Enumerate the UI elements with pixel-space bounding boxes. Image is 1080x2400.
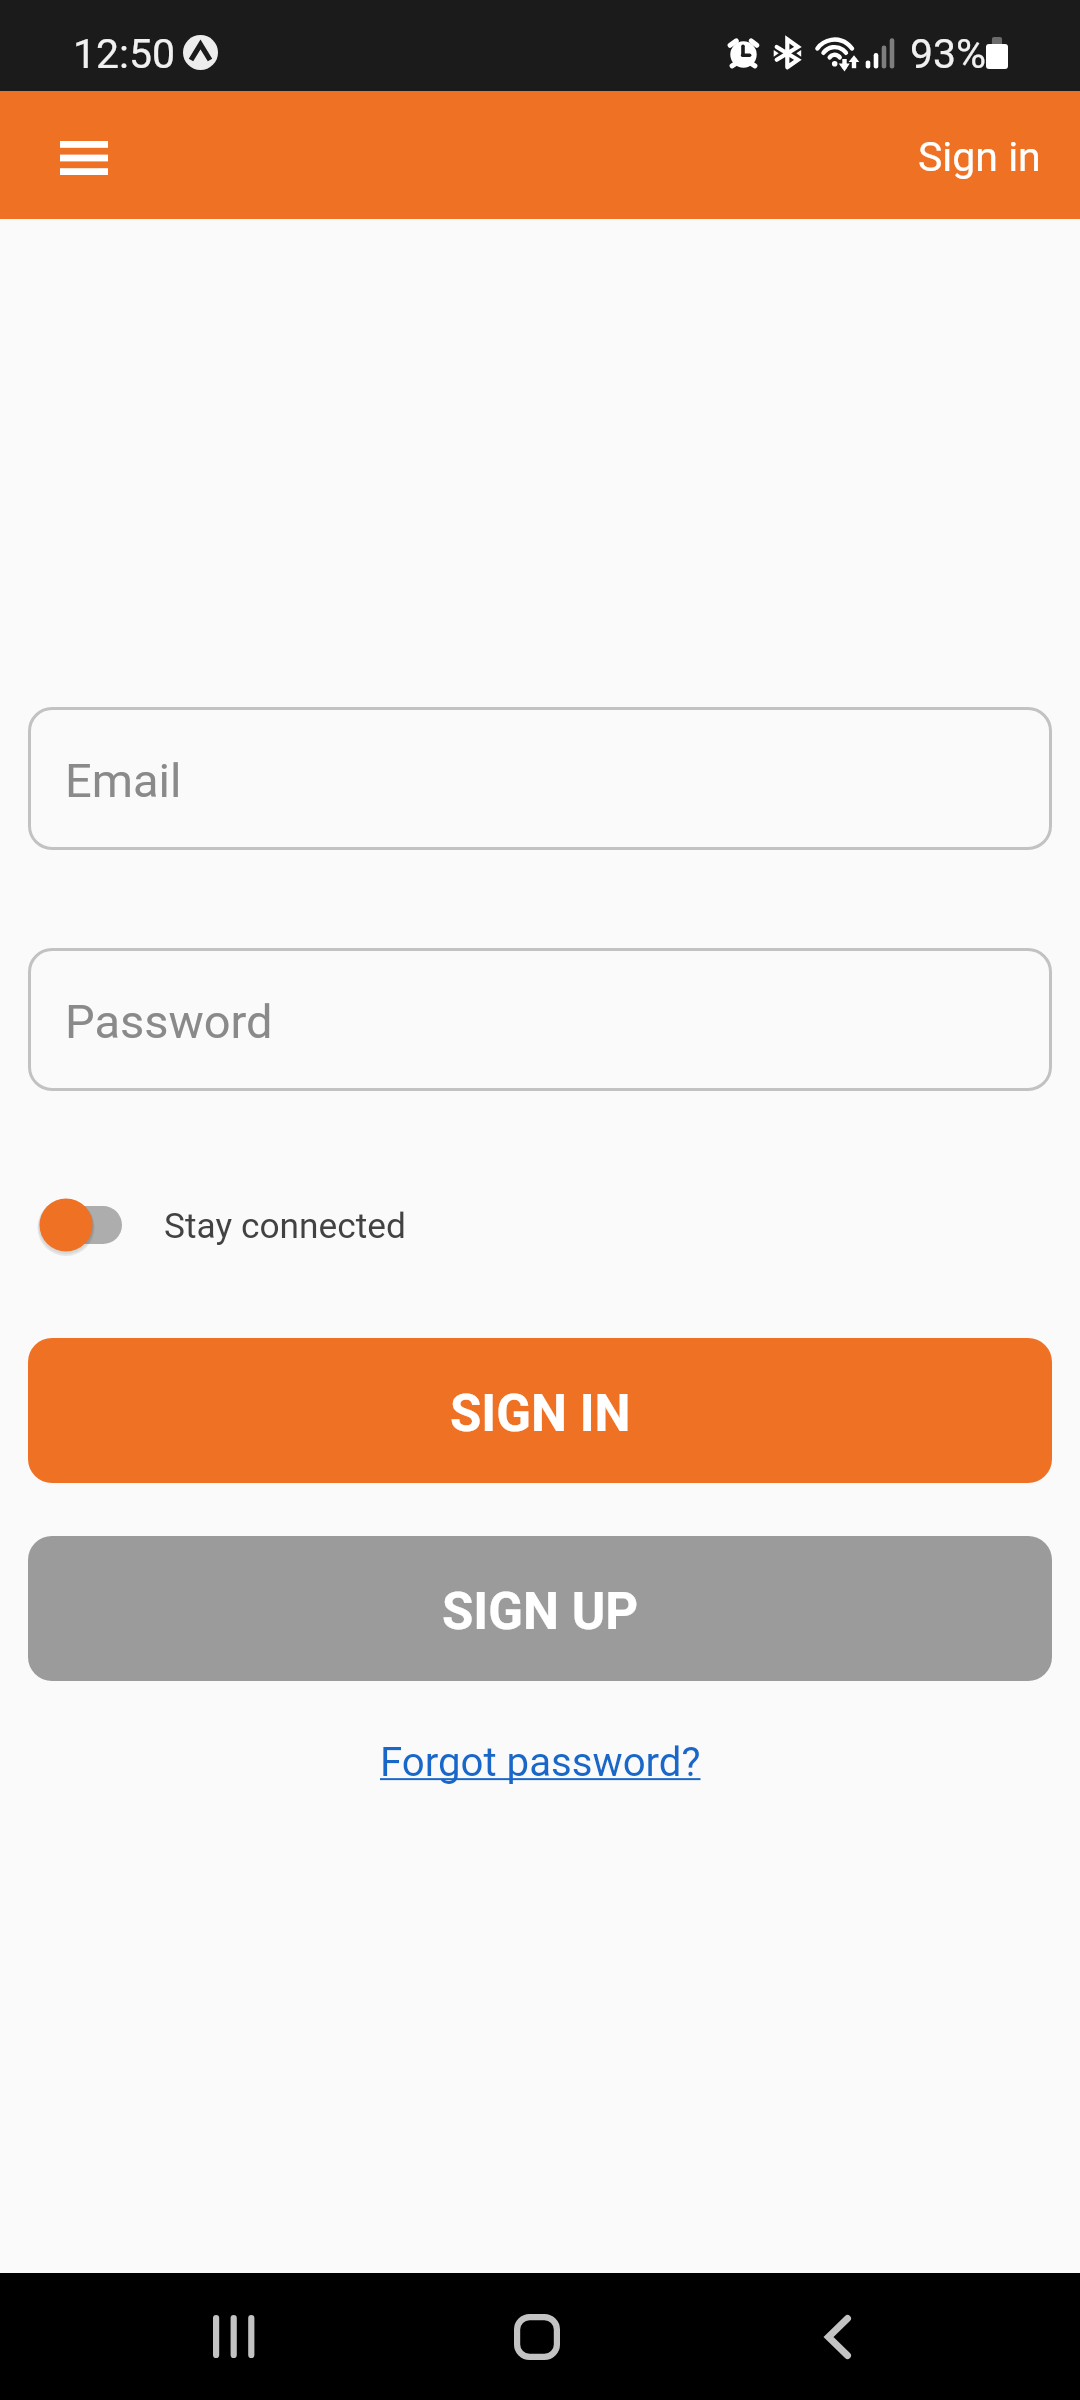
button[interactable]: Back: [778, 2274, 898, 2399]
button[interactable]: SIGN IN: [28, 1338, 1052, 1483]
staticText: Forgot password?: [380, 1739, 701, 1786]
button[interactable]: Open navigation menu: [41, 106, 126, 210]
button[interactable]: SIGN UP: [28, 1536, 1052, 1681]
staticText: SIGN UP: [442, 1582, 639, 1642]
button[interactable]: Forgot password?: [364, 1725, 717, 1800]
staticText: 93%: [910, 30, 987, 78]
staticText: Stay connected: [164, 1205, 406, 1246]
button[interactable]: Password: [28, 948, 1052, 1091]
staticText: Sign in: [918, 133, 1041, 181]
staticText: SIGN IN: [450, 1384, 631, 1444]
button[interactable]: Stay connected: [28, 1193, 406, 1257]
staticText: Password: [65, 994, 273, 1049]
button[interactable]: Sign in: [876, 109, 1080, 201]
button[interactable]: Email: [28, 707, 1052, 850]
staticText: 12:50: [73, 30, 176, 78]
button[interactable]: Recent apps: [174, 2274, 294, 2399]
button[interactable]: Home: [477, 2273, 597, 2400]
staticText: Email: [65, 753, 182, 808]
